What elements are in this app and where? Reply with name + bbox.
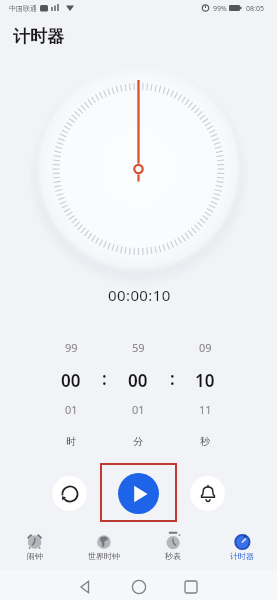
staticText: 01 [132, 402, 145, 417]
staticText: 01 [65, 402, 78, 417]
staticText: 99 [65, 340, 78, 355]
button[interactable] [118, 473, 159, 514]
staticText: 秒表 [165, 551, 181, 561]
staticText: : [102, 367, 107, 390]
staticText: 中国联通 [9, 4, 37, 13]
button[interactable] [124, 572, 153, 600]
button[interactable] [52, 476, 87, 511]
staticText: 世界时钟 [88, 551, 120, 561]
staticText: 00 [128, 369, 148, 392]
staticText: 时 [66, 435, 76, 448]
staticText: 09 [199, 340, 212, 355]
staticText: 11 [199, 402, 212, 417]
staticText: 10 [195, 369, 215, 392]
staticText: : [170, 367, 175, 390]
staticText: 计时器 [13, 26, 64, 47]
staticText: 99% [213, 4, 227, 14]
staticText: 闹钟 [27, 551, 43, 561]
staticText: 00 [61, 369, 81, 392]
staticText: 08:05 [246, 4, 264, 14]
button[interactable] [210, 528, 274, 564]
staticText: 59 [132, 340, 145, 355]
button[interactable] [3, 528, 67, 564]
button[interactable] [72, 528, 136, 564]
staticText: 秒 [200, 435, 210, 448]
button[interactable] [176, 572, 205, 600]
staticText: 分 [133, 435, 143, 448]
button[interactable] [190, 476, 225, 511]
button[interactable] [70, 572, 99, 600]
staticText: 00:00:10 [108, 285, 171, 305]
button[interactable] [141, 528, 205, 564]
staticText: 计时器 [230, 551, 254, 561]
